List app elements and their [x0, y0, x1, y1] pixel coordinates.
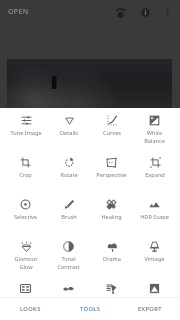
button[interactable]: HDR Scape: [133, 192, 176, 234]
button[interactable]: Grunge: [90, 276, 133, 318]
button[interactable]: Selective: [4, 192, 47, 234]
button[interactable]: Stacks: [110, 2, 130, 22]
button[interactable]: Grainy Film: [4, 276, 47, 318]
staticText: Healing: [101, 213, 122, 221]
button[interactable]: Rotate: [47, 150, 90, 192]
staticText: Tune Image: [10, 129, 42, 137]
staticText: Selective: [14, 213, 37, 221]
button[interactable]: Perspective: [90, 150, 133, 192]
staticText: White Balance: [144, 129, 165, 144]
button[interactable]: Crop: [4, 150, 47, 192]
button[interactable]: Details: [47, 108, 90, 150]
staticText: Crop: [19, 171, 32, 179]
button[interactable]: Healing: [90, 192, 133, 234]
staticText: Details: [60, 129, 78, 137]
button[interactable]: Black & White: [133, 276, 176, 318]
staticText: Brush: [61, 213, 77, 221]
button[interactable]: Drama: [90, 234, 133, 276]
staticText: Tonal Contrast: [57, 255, 80, 270]
staticText: HDR Scape: [140, 213, 169, 221]
staticText: Perspective: [96, 171, 127, 179]
staticText: Curves: [103, 129, 121, 137]
button[interactable]: Glamour Glow: [4, 234, 47, 276]
staticText: TOOLS: [80, 305, 101, 313]
staticText: Glamour Glow: [14, 255, 38, 270]
button[interactable]: Tonal Contrast: [47, 234, 90, 276]
button[interactable]: Vintage: [133, 234, 176, 276]
staticText: OPEN: [8, 7, 29, 17]
button[interactable]: Expand: [133, 150, 176, 192]
button[interactable]: LOOKS: [0, 297, 60, 320]
button[interactable]: Retrolux: [47, 276, 90, 318]
staticText: Vintage: [144, 255, 165, 263]
staticText: Rotate: [60, 171, 78, 179]
button[interactable]: Brush: [47, 192, 90, 234]
button[interactable]: Curves: [90, 108, 133, 150]
staticText: Drama: [103, 255, 121, 263]
staticText: LOOKS: [20, 305, 41, 313]
button[interactable]: White Balance: [133, 108, 176, 150]
button[interactable]: Info: [135, 2, 155, 22]
button[interactable]: TOOLS: [60, 297, 120, 320]
staticText: Expand: [145, 171, 165, 179]
button[interactable]: EXPORT: [120, 297, 180, 320]
staticText: EXPORT: [138, 305, 162, 313]
button[interactable]: OPEN: [4, 3, 33, 21]
button[interactable]: Tune Image: [4, 108, 47, 150]
